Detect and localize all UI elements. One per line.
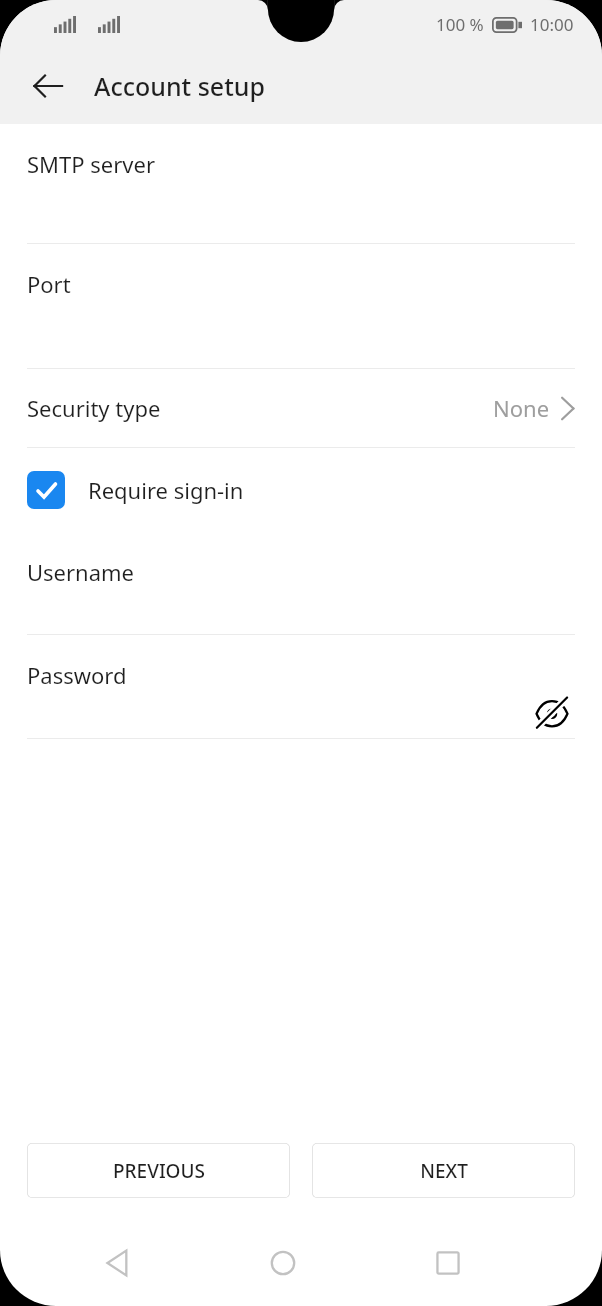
staticText: Require sign-in xyxy=(88,475,244,505)
staticText: SMTP server xyxy=(27,149,155,179)
staticText: Account setup xyxy=(94,69,265,103)
staticText: Password xyxy=(27,660,127,690)
staticText: None xyxy=(493,393,550,423)
button[interactable]: Username xyxy=(0,532,602,634)
staticText: PREVIOUS xyxy=(113,1158,205,1184)
staticText: NEXT xyxy=(420,1158,468,1184)
staticText: 100 % xyxy=(436,13,484,36)
button[interactable]: Password xyxy=(0,635,602,738)
staticText: 10:00 xyxy=(530,13,574,36)
staticText: Username xyxy=(27,557,135,587)
button[interactable]: Back xyxy=(90,1235,146,1291)
button[interactable]: Port xyxy=(0,244,602,368)
button[interactable]: SMTP server xyxy=(0,124,602,243)
staticText: Security type xyxy=(27,393,161,423)
button[interactable]: PREVIOUS xyxy=(27,1143,290,1198)
button[interactable]: Home xyxy=(255,1235,311,1291)
staticText: Port xyxy=(27,269,71,299)
button[interactable]: Recents xyxy=(420,1235,476,1291)
button[interactable]: Show password xyxy=(529,690,575,736)
button[interactable]: NEXT xyxy=(312,1143,575,1198)
button[interactable]: Require sign-in xyxy=(0,448,602,532)
button[interactable]: Security type xyxy=(0,369,602,447)
button[interactable]: Back xyxy=(14,52,82,120)
